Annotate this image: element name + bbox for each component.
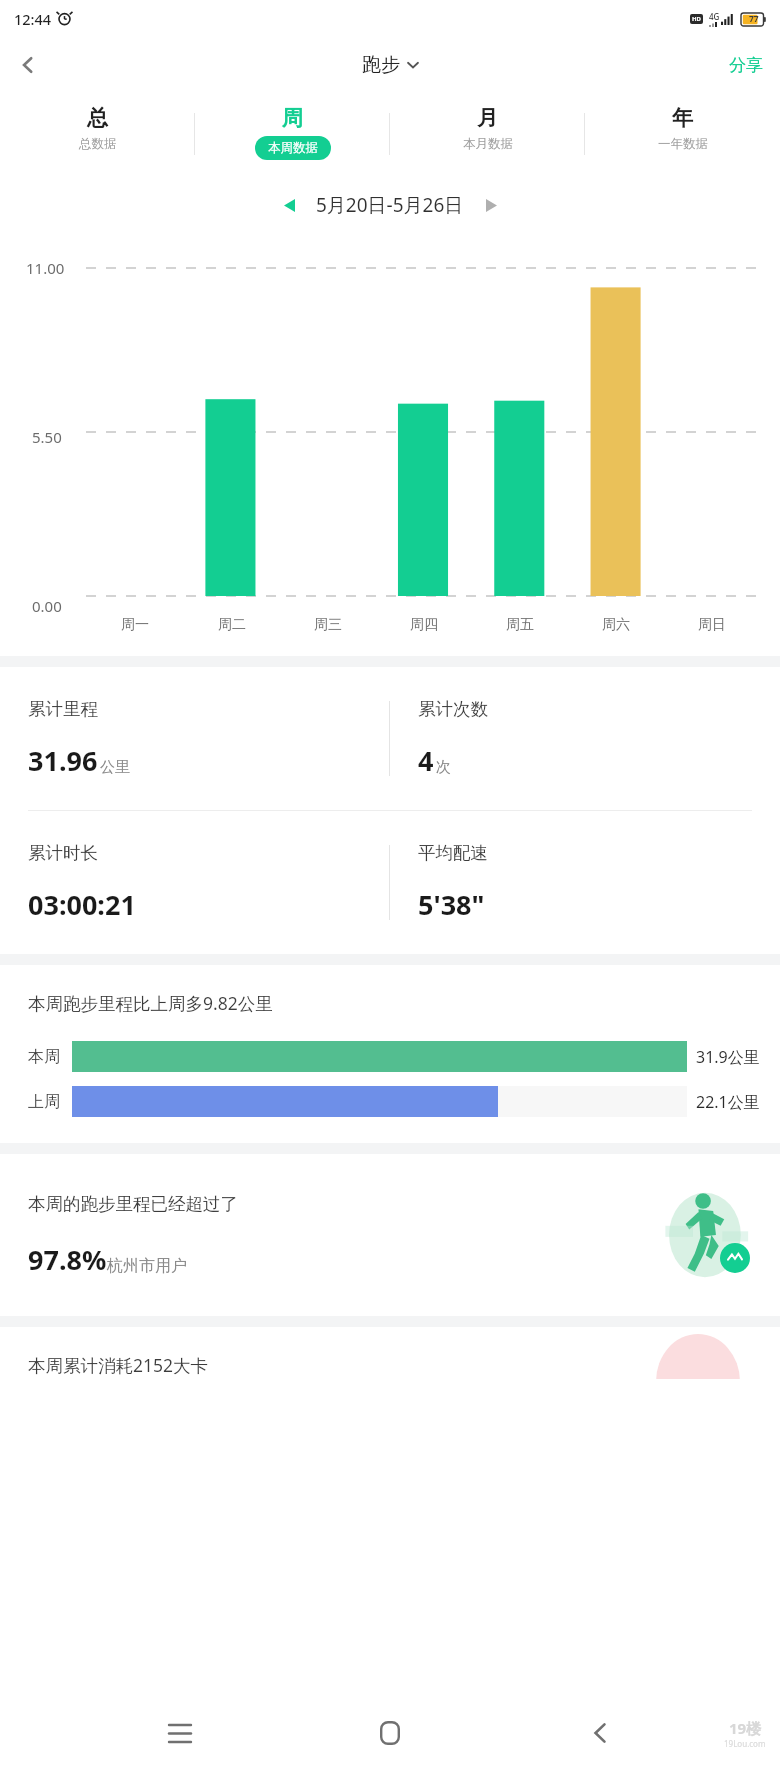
staticText: 11.00 (26, 258, 65, 278)
button[interactable]: 跑步 (362, 53, 419, 77)
staticText: 22.1公里 (696, 1091, 760, 1113)
staticText: 4G (709, 11, 720, 22)
staticText: 总数据 (79, 136, 117, 152)
staticText: 周 (282, 105, 303, 131)
staticText: 31.96 (28, 742, 98, 779)
staticText: 周六 (602, 616, 630, 634)
staticText: 月 (477, 105, 498, 131)
staticText: 本周累计消耗2152大卡 (28, 1353, 209, 1377)
staticText: 本月数据 (463, 136, 513, 152)
button[interactable]: Previous week (270, 186, 308, 224)
staticText: 累计里程 (28, 698, 98, 720)
staticText: HD (692, 15, 701, 23)
staticText: 97.8% (28, 1241, 107, 1278)
staticText: 19楼 (729, 1718, 762, 1738)
staticText: 31.9公里 (696, 1046, 760, 1068)
button[interactable]: 月 (390, 93, 585, 174)
staticText: 19Lou.com (724, 1738, 766, 1749)
staticText: 跑步 (362, 53, 400, 77)
button[interactable]: Back (570, 1703, 630, 1763)
button[interactable]: Recent apps (150, 1703, 210, 1763)
staticText: 本周 (28, 1047, 60, 1067)
button[interactable]: 分享 (712, 37, 780, 93)
staticText: 周四 (410, 616, 438, 634)
staticText: 累计时长 (28, 842, 98, 864)
staticText: 杭州市用户 (107, 1256, 187, 1276)
staticText: 周五 (506, 616, 534, 634)
staticText: 77 (749, 13, 759, 25)
staticText: 03:00:21 (28, 886, 136, 923)
staticText: 上周 (28, 1092, 60, 1112)
staticText: 本周的跑步里程已经超过了 (28, 1193, 238, 1215)
staticText: 总 (87, 105, 108, 131)
staticText: 0.00 (32, 596, 62, 616)
staticText: 次 (436, 758, 451, 777)
button[interactable]: 周 (195, 93, 390, 174)
staticText: 一年数据 (658, 136, 708, 152)
button[interactable]: Back (0, 37, 56, 93)
staticText: 周三 (314, 616, 342, 634)
staticText: 累计次数 (418, 698, 488, 720)
staticText: 4 (418, 742, 434, 779)
staticText: 5'38" (418, 886, 485, 923)
staticText: 本周跑步里程比上周多9.82公里 (28, 991, 273, 1015)
button[interactable]: Next week (472, 186, 510, 224)
staticText: 分享 (729, 55, 763, 76)
staticText: 年 (672, 105, 693, 131)
staticText: 本周数据 (268, 140, 318, 156)
button[interactable]: 总 (0, 93, 195, 174)
staticText: 周二 (218, 616, 246, 634)
staticText: 公里 (100, 758, 130, 777)
button[interactable]: Home (360, 1703, 420, 1763)
staticText: 5.50 (32, 427, 62, 447)
button[interactable]: 年 (585, 93, 780, 174)
staticText: 12:44 (14, 9, 52, 29)
staticText: 5月20日-5月26日 (316, 192, 464, 218)
staticText: 周日 (698, 616, 726, 634)
button[interactable]: Running record badge (720, 1243, 750, 1273)
staticText: 平均配速 (418, 842, 488, 864)
staticText: 周一 (121, 616, 149, 634)
